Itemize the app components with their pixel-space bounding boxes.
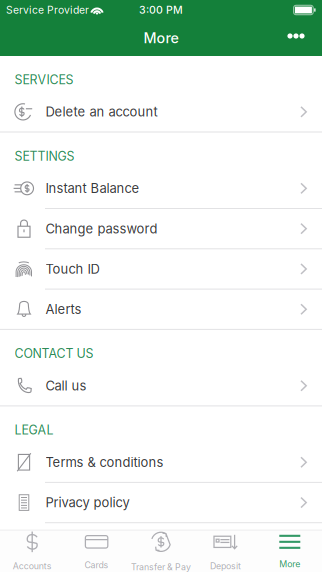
staticText: Accounts [13,561,52,571]
staticText: SETTINGS [14,149,74,164]
staticText: Delete an account [45,104,157,120]
button[interactable]: Alerts [0,290,322,329]
staticText: Call us [45,378,86,394]
button[interactable]: Call us [0,366,322,405]
button[interactable]: More options [281,24,311,51]
staticText: LEGAL [14,423,53,438]
staticText: Cards [85,560,109,570]
button[interactable]: Change password [0,209,322,248]
button[interactable]: More [258,530,322,572]
staticText: Privacy policy [45,495,129,510]
staticText: 3:00 PM [139,4,183,16]
staticText: Change password [45,221,157,236]
button[interactable]: Cards [64,530,129,572]
staticText: CONTACT US [14,346,93,361]
staticText: Transfer & Pay [131,562,191,572]
button[interactable]: Terms & conditions [0,443,322,482]
button[interactable]: Touch ID [0,249,322,289]
staticText: Alerts [45,301,81,317]
button[interactable]: Instant Balance [0,169,322,208]
staticText: Touch ID [45,261,99,277]
staticText: Instant Balance [45,180,139,196]
button[interactable]: Privacy policy [0,483,322,522]
button[interactable]: Accounts [0,530,64,572]
staticText: SERVICES [14,72,73,87]
staticText: Terms & conditions [45,454,163,470]
button[interactable]: Deposit [193,530,258,572]
staticText: Service Provider [6,4,89,16]
button[interactable]: Transfer & Pay [129,530,193,572]
button[interactable]: Delete an account [0,92,322,131]
staticText: Deposit [210,561,241,571]
staticText: More [143,29,178,47]
staticText: More [279,559,300,569]
